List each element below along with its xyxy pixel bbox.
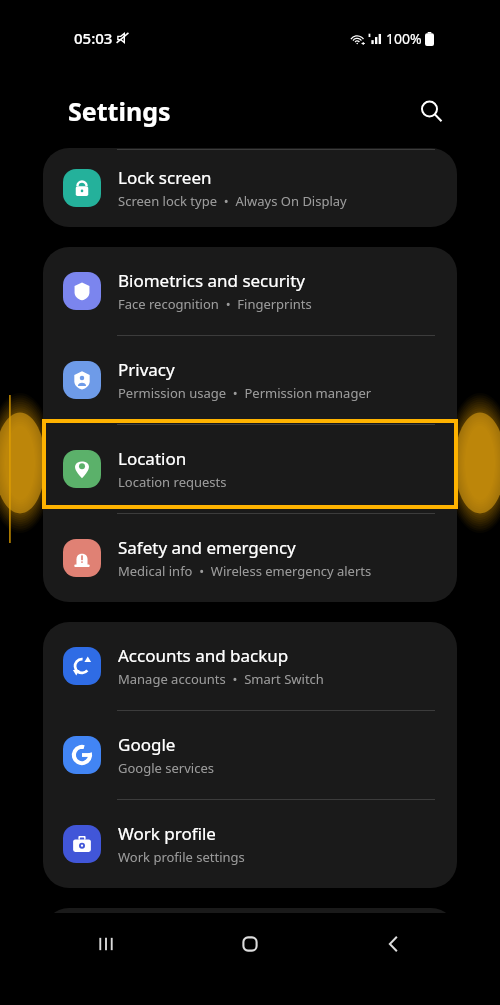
staticText: Screen lock type • Always On Display — [118, 192, 347, 210]
button[interactable]: Search settings — [408, 88, 454, 134]
staticText: Biometrics and security — [118, 269, 305, 292]
button[interactable]: Work profile — [43, 800, 457, 888]
staticText: Work profile — [118, 822, 216, 845]
button[interactable]: Privacy — [43, 336, 457, 424]
button[interactable]: Google — [43, 711, 457, 799]
button[interactable]: Recent apps — [78, 916, 134, 972]
button[interactable]: Advanced features — [43, 908, 457, 968]
staticText: Location — [118, 447, 187, 470]
button[interactable]: Safety and emergency — [43, 514, 457, 602]
staticText: Settings — [68, 94, 171, 128]
button[interactable]: Home — [222, 916, 278, 972]
staticText: Permission usage • Permission manager — [118, 384, 372, 402]
button[interactable]: Back — [366, 916, 422, 972]
staticText: 100% — [386, 29, 422, 48]
button[interactable]: Location — [43, 425, 457, 513]
staticText: Manage accounts • Smart Switch — [118, 670, 324, 688]
staticText: Face recognition • Fingerprints — [118, 295, 312, 313]
button[interactable]: Lock screen — [43, 148, 457, 227]
button[interactable]: Accounts and backup — [43, 622, 457, 710]
staticText: Work profile settings — [118, 848, 245, 866]
staticText: Google services — [118, 759, 214, 777]
staticText: Google — [118, 733, 176, 756]
button[interactable]: Biometrics and security — [43, 247, 457, 335]
staticText: Privacy — [118, 358, 175, 381]
staticText: Advanced features — [118, 940, 267, 963]
staticText: Lock screen — [118, 166, 212, 189]
staticText: 05:03 — [74, 28, 113, 48]
staticText: Accounts and backup — [118, 644, 289, 667]
staticText: Location requests — [118, 473, 227, 491]
staticText: Medical info • Wireless emergency alerts — [118, 562, 372, 580]
staticText: Safety and emergency — [118, 536, 296, 559]
